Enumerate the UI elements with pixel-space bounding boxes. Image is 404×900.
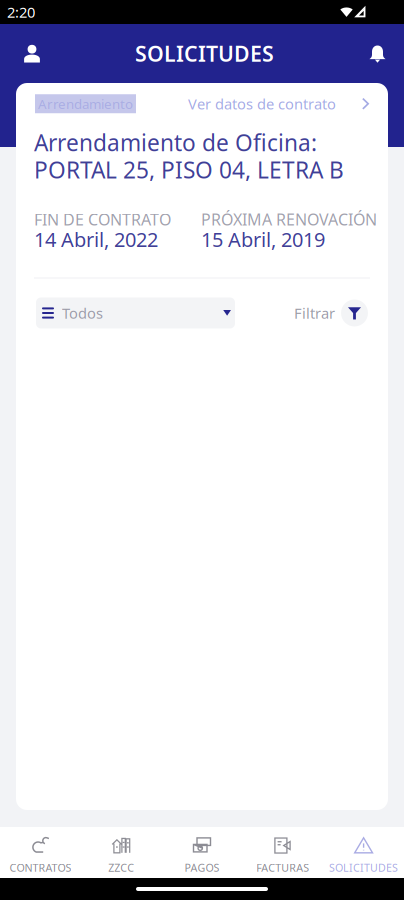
staticText: FIN DE CONTRATO [34,209,171,230]
staticText: PAGOS [184,860,219,875]
staticText: 2:20 [7,2,35,22]
button[interactable]: ZZCC [81,824,162,881]
button[interactable]: Filtrar [294,299,368,326]
button[interactable]: PAGOS [162,824,242,881]
button[interactable]: SOLICITUDES [323,824,404,881]
staticText: PRÓXIMA RENOVACIÓN [201,209,377,230]
button[interactable]: FACTURAS [242,824,323,881]
staticText: Arrendamiento [38,95,133,113]
button[interactable]: Perfil [14,31,50,75]
staticText: Filtrar [294,303,335,323]
staticText: CONTRATOS [9,860,71,875]
button[interactable]: Notificaciones [359,31,395,75]
staticText: FACTURAS [256,860,309,875]
staticText: PORTAL 25, PISO 04, LETRA B [34,155,344,185]
staticText: SOLICITUDES [135,39,274,68]
staticText: SOLICITUDES [329,860,398,875]
staticText: Todos [62,303,103,323]
button[interactable]: CONTRATOS [0,824,81,881]
staticText: Ver datos de contrato [188,94,336,113]
button[interactable]: Todos [36,297,235,328]
staticText: Arrendamiento de Oficina: [34,127,317,158]
button[interactable]: Ver datos de contrato [188,91,369,116]
staticText: 14 Abril, 2022 [34,226,158,252]
staticText: 15 Abril, 2019 [201,226,325,252]
staticText: ZZCC [108,860,134,875]
